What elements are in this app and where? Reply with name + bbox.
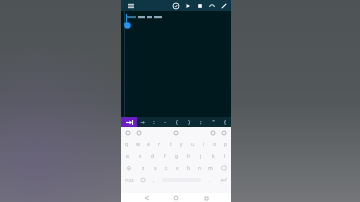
staticText: o — [213, 141, 217, 148]
staticText: { — [224, 119, 226, 126]
staticText: w — [136, 141, 140, 148]
staticText: t — [170, 141, 172, 148]
staticText: q — [125, 141, 129, 148]
staticText: f — [164, 153, 166, 160]
button[interactable]: Undo — [207, 1, 216, 10]
button[interactable]: p — [220, 138, 231, 150]
button[interactable]: Clipboard — [125, 130, 131, 136]
staticText: - — [164, 119, 166, 126]
staticText: " — [212, 119, 215, 126]
button[interactable]: Run — [183, 1, 192, 10]
staticText: u — [191, 141, 195, 148]
button[interactable]: Back — [143, 194, 151, 202]
button[interactable]: f — [159, 150, 171, 162]
button[interactable]: ) — [183, 117, 195, 127]
button[interactable]: j — [195, 150, 207, 162]
button[interactable]: l — [219, 150, 231, 162]
button[interactable]: ; — [195, 117, 207, 127]
button[interactable]: q — [121, 138, 132, 150]
button[interactable]: n — [194, 162, 205, 174]
button[interactable]: Shift — [121, 162, 137, 174]
button[interactable]: Backspace — [216, 162, 231, 174]
staticText: m — [208, 165, 213, 172]
button[interactable]: e — [143, 138, 154, 150]
button[interactable]: b — [183, 162, 194, 174]
staticText: h — [187, 153, 191, 160]
button[interactable]: r — [154, 138, 165, 150]
staticText: ?123 — [125, 178, 134, 183]
button[interactable]: g — [171, 150, 183, 162]
button[interactable]: z — [137, 162, 149, 174]
staticText: ; — [200, 119, 202, 126]
staticText: z — [142, 165, 145, 172]
staticText: c — [165, 165, 168, 172]
button[interactable]: k — [207, 150, 219, 162]
staticText: ( — [176, 119, 178, 126]
staticText: r — [158, 141, 161, 148]
staticText: . — [209, 177, 211, 184]
staticText: → — [140, 119, 145, 125]
button[interactable]: Emoji — [210, 130, 216, 136]
button[interactable]: h — [183, 150, 195, 162]
staticText: j — [200, 153, 202, 160]
button[interactable]: - — [159, 117, 171, 127]
button[interactable]: Recents — [202, 194, 210, 202]
button[interactable]: c — [161, 162, 172, 174]
staticText: p — [224, 141, 228, 148]
button[interactable]: d — [147, 150, 159, 162]
button[interactable]: Voice input — [173, 130, 179, 136]
button[interactable]: More — [221, 130, 227, 136]
button[interactable]: Enter — [215, 174, 231, 186]
button[interactable]: m — [205, 162, 216, 174]
staticText: i — [203, 141, 205, 148]
staticText: y — [180, 141, 183, 148]
staticText: ) — [188, 119, 190, 126]
button[interactable]: t — [165, 138, 176, 150]
button[interactable]: Edit — [219, 1, 228, 10]
button[interactable]: u — [187, 138, 198, 150]
button[interactable]: s — [134, 150, 147, 162]
staticText: l — [224, 153, 226, 160]
button[interactable]: w — [132, 138, 143, 150]
staticText: d — [151, 153, 155, 160]
staticText: b — [187, 165, 191, 172]
staticText: e — [147, 141, 150, 148]
button[interactable]: v — [172, 162, 183, 174]
button[interactable]: a — [121, 150, 134, 162]
button[interactable]: Emoji — [137, 174, 148, 186]
staticText: s — [139, 153, 142, 160]
staticText: x — [154, 165, 157, 172]
button[interactable]: ( — [171, 117, 183, 127]
button[interactable] — [121, 11, 231, 117]
button[interactable]: Tab — [121, 117, 137, 127]
button[interactable]: i — [198, 138, 209, 150]
button[interactable]: Menu — [126, 1, 135, 10]
staticText: a — [126, 153, 129, 160]
button[interactable]: x — [149, 162, 161, 174]
button[interactable]: y — [176, 138, 187, 150]
button[interactable]: ?123 — [121, 174, 137, 186]
button[interactable]: Home — [172, 194, 180, 202]
button[interactable]: : — [148, 117, 159, 127]
button[interactable]: Stop — [195, 1, 204, 10]
staticText: k — [212, 153, 215, 160]
staticText: n — [198, 165, 202, 172]
staticText: g — [175, 153, 179, 160]
button[interactable]: → — [137, 117, 148, 127]
button[interactable]: o — [209, 138, 220, 150]
button[interactable]: " — [207, 117, 219, 127]
staticText: : — [153, 119, 155, 126]
button[interactable]: , — [148, 174, 159, 186]
button[interactable]: Run check — [171, 1, 180, 10]
staticText: v — [176, 165, 179, 172]
button[interactable]: { — [219, 117, 231, 127]
staticText: , — [153, 177, 155, 184]
button[interactable]: Settings — [136, 130, 142, 136]
